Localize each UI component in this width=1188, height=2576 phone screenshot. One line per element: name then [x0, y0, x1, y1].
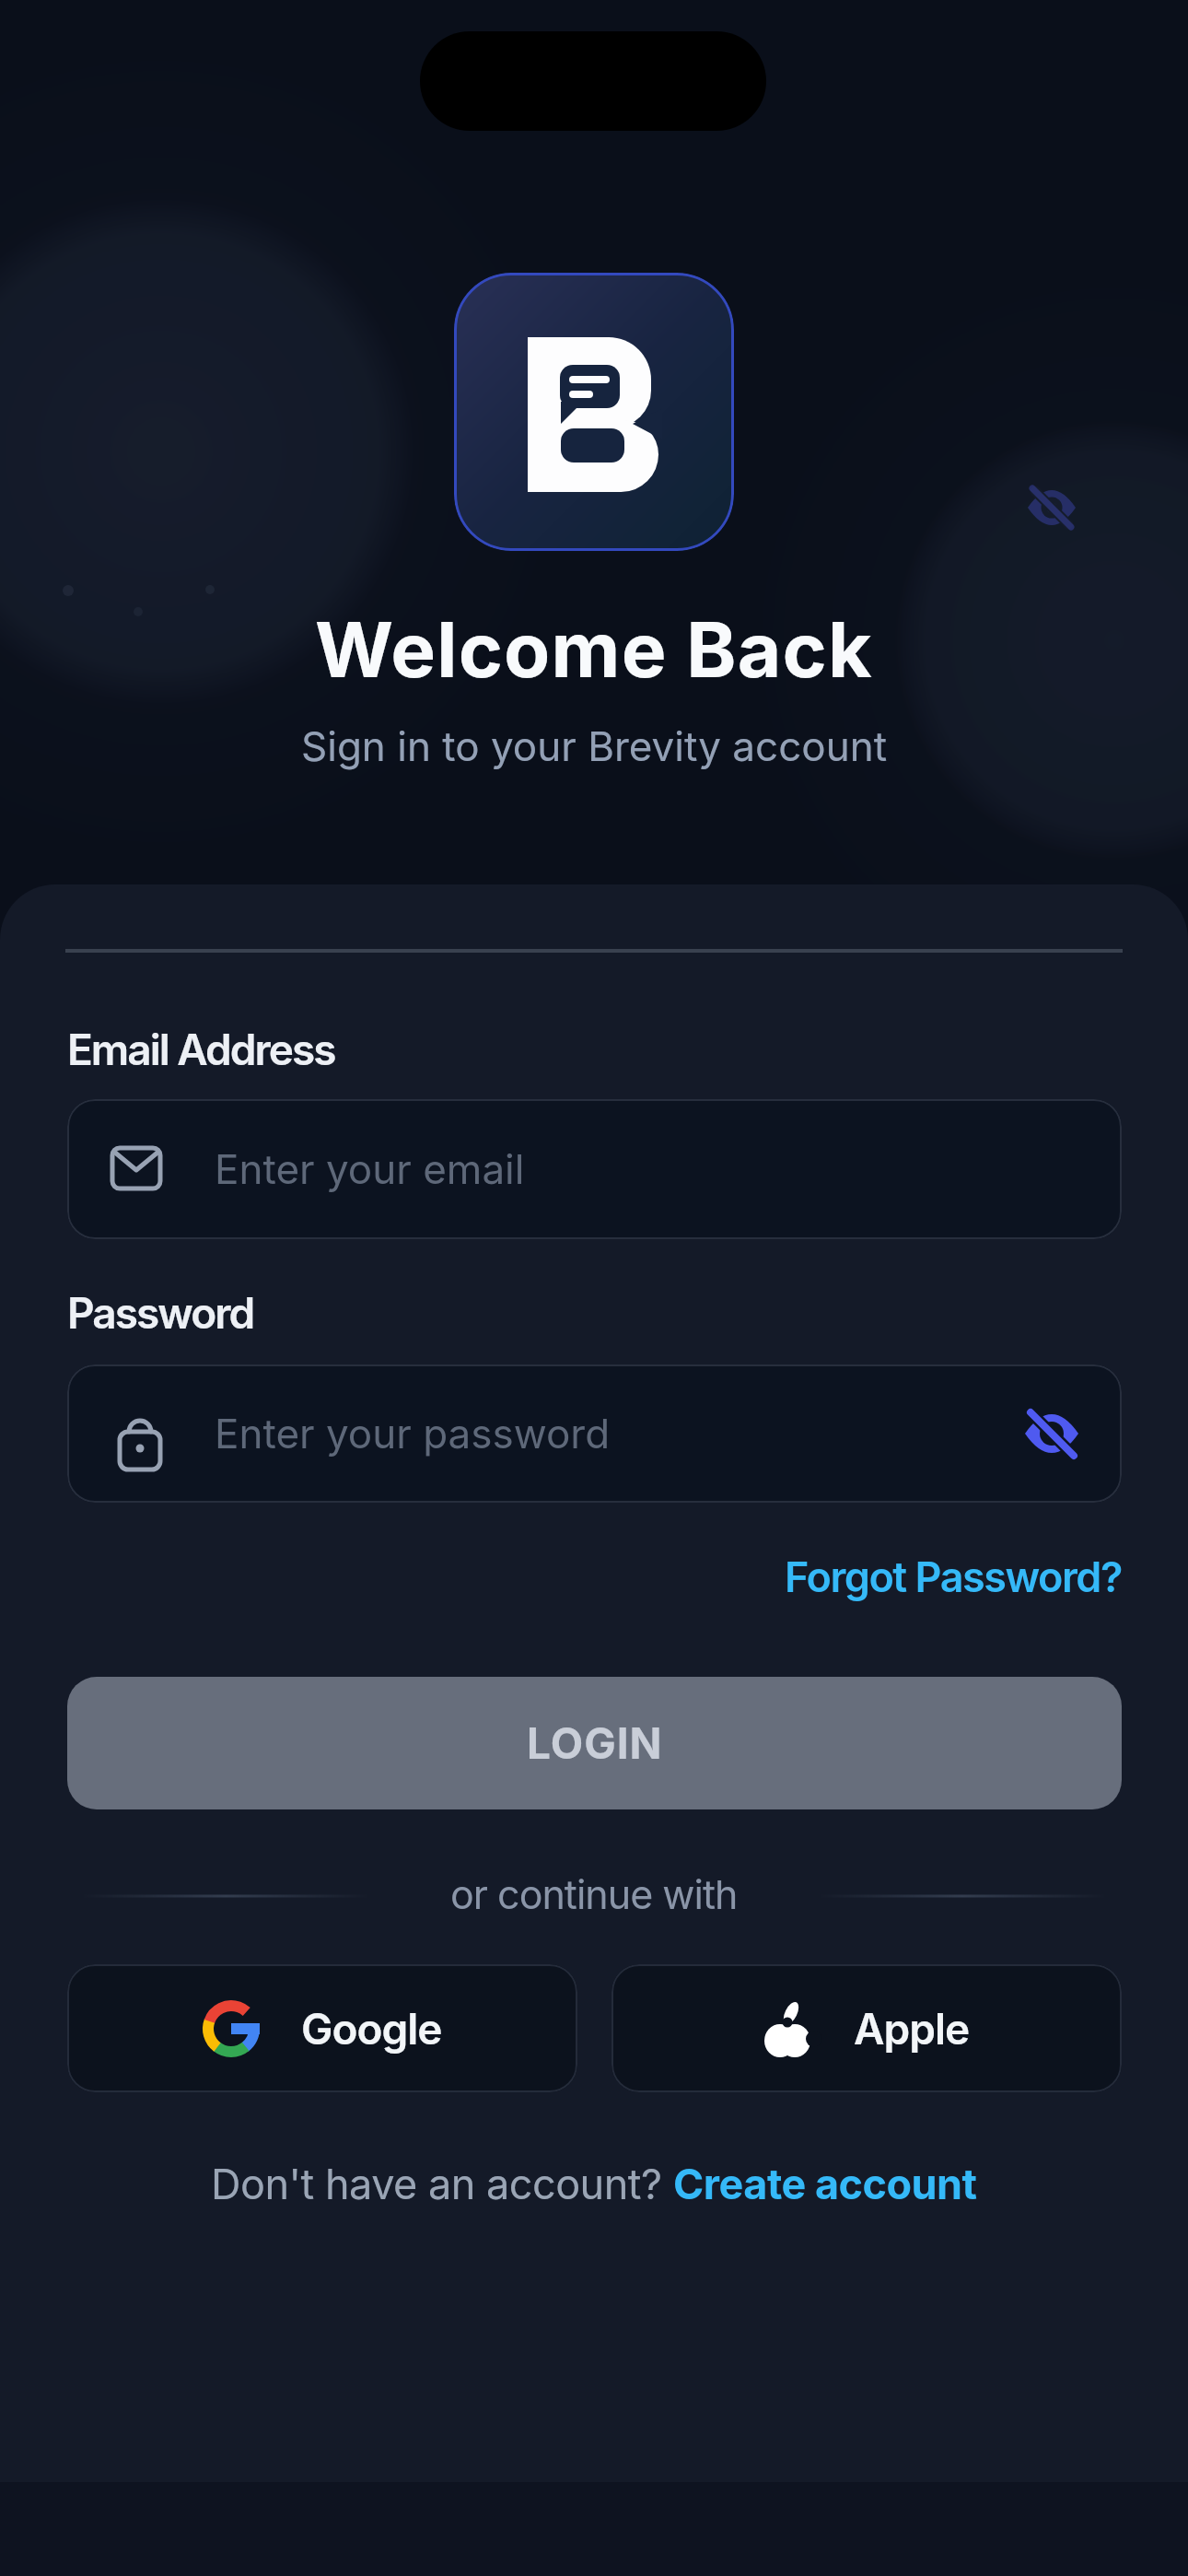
button[interactable]: Apple [611, 1964, 1122, 2092]
staticText: LOGIN [527, 1717, 663, 1769]
staticText: or continue with [450, 1870, 738, 1918]
button[interactable]: Enter your password [67, 1364, 1122, 1503]
button[interactable]: Enter your email [67, 1099, 1122, 1239]
button[interactable]: LOGIN [67, 1677, 1122, 1809]
button[interactable]: Don't have an account? [211, 2159, 977, 2208]
button[interactable]: Forgot Password? [785, 1551, 1122, 1601]
staticText: Sign in to your Brevity account [301, 721, 888, 770]
staticText: Password [67, 1287, 254, 1339]
staticText: Create account [673, 2159, 977, 2208]
staticText: Email Address [67, 1024, 335, 1075]
button[interactable]: Google [67, 1964, 577, 2092]
staticText: Enter your password [215, 1409, 611, 1458]
staticText: Enter your email [215, 1144, 525, 1193]
staticText: Welcome Back [315, 604, 873, 696]
staticText: Don't have an account? [211, 2159, 673, 2208]
staticText: Apple [854, 2003, 970, 2055]
staticText: Google [301, 2003, 442, 2055]
